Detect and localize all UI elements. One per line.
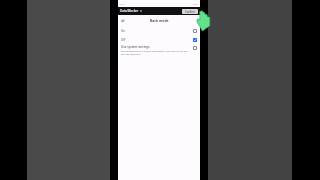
staticText: Back mode (150, 18, 169, 23)
staticText: Use system settings (121, 45, 150, 49)
staticText: Off (121, 38, 126, 42)
staticText: 64% (193, 2, 198, 5)
other: Mode icon (121, 19, 125, 23)
staticText: Confirm (185, 10, 196, 14)
button[interactable]: Use system settings (121, 45, 197, 56)
staticText: 7:41 (120, 2, 125, 5)
button[interactable]: Off (121, 35, 197, 44)
staticText: Data Blocker (120, 9, 139, 13)
staticText: On (121, 29, 126, 33)
button[interactable]: Confirm (182, 9, 198, 14)
other: Pointer (196, 10, 212, 32)
staticText: Back is selected as a system-level defau… (121, 50, 191, 56)
button[interactable]: On (121, 26, 197, 35)
